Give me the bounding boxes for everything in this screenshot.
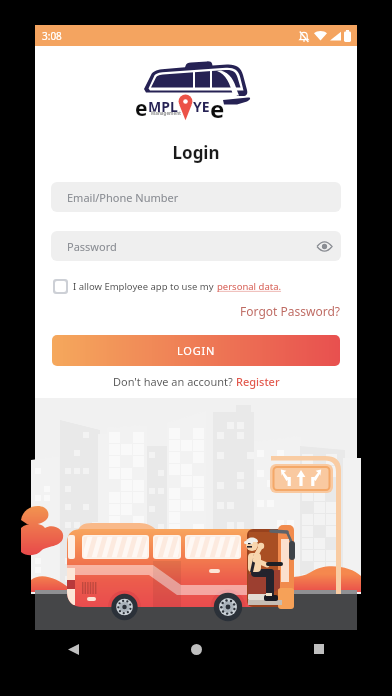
staticText: MPL xyxy=(148,97,178,116)
staticText: Management xyxy=(151,110,182,116)
staticText: Password xyxy=(67,239,117,254)
button[interactable]: Show password xyxy=(313,235,335,257)
button[interactable]: Forgot Password? xyxy=(35,303,340,319)
staticText: I allow Employee app to use my xyxy=(73,280,217,293)
button[interactable]: Password xyxy=(51,231,341,261)
staticText: YE xyxy=(193,97,210,116)
staticText: 3:08 xyxy=(42,29,62,43)
button[interactable]: LOGIN xyxy=(52,335,340,366)
button[interactable]: Register xyxy=(236,374,280,389)
button[interactable]: Back xyxy=(60,636,86,662)
staticText: e xyxy=(135,94,148,123)
button[interactable]: Email/Phone Number xyxy=(51,182,341,212)
button[interactable]: I allow Employee app to use my xyxy=(53,275,282,297)
staticText: Login xyxy=(35,141,357,164)
staticText: LOGIN xyxy=(177,343,216,358)
staticText: personal data. xyxy=(217,280,282,293)
staticText: e xyxy=(210,92,225,125)
staticText: Email/Phone Number xyxy=(67,190,179,205)
button[interactable]: Home xyxy=(183,636,209,662)
staticText: Don't have an account? xyxy=(113,374,236,389)
button[interactable]: Recents xyxy=(306,636,332,662)
